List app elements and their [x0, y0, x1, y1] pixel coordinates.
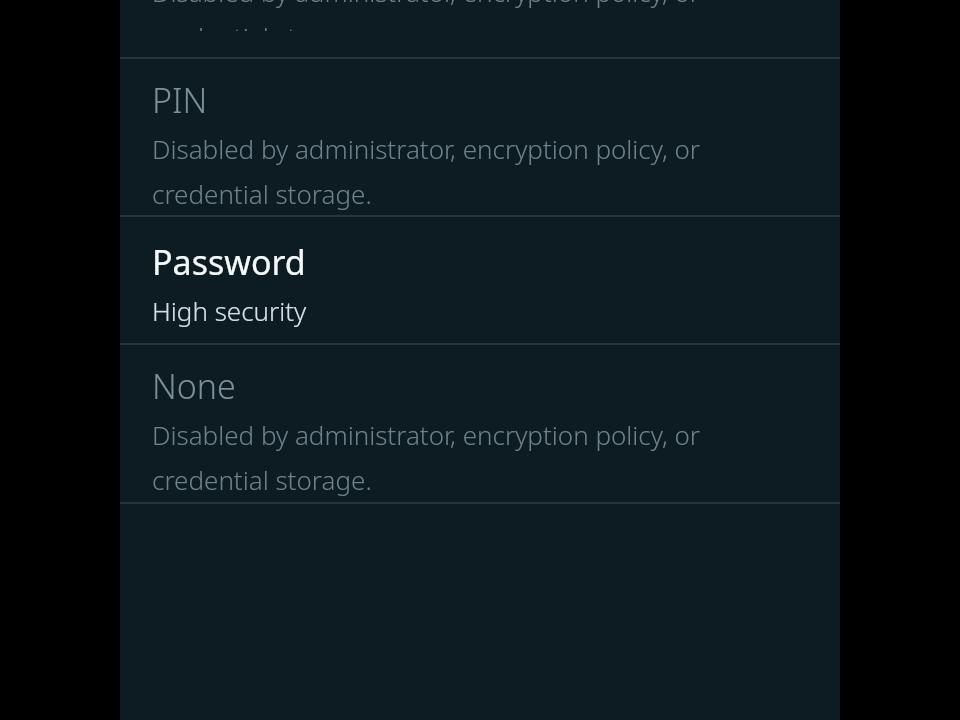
staticText: PIN: [152, 77, 208, 123]
staticText: credential storage.: [152, 462, 372, 497]
button[interactable]: PIN: [120, 59, 840, 215]
staticText: credential storage.: [152, 176, 372, 211]
staticText: Disabled by administrator, encryption po…: [152, 131, 701, 166]
staticText: credential storage.: [152, 19, 372, 31]
staticText: High security: [152, 293, 307, 328]
staticText: None: [152, 363, 236, 409]
staticText: Disabled by administrator, encryption po…: [152, 417, 701, 452]
button[interactable]: Password: [120, 217, 840, 343]
staticText: Disabled by administrator, encryption po…: [152, 0, 701, 9]
button[interactable]: Disabled by administrator, encryption po…: [120, 0, 840, 57]
button[interactable]: None: [120, 345, 840, 502]
staticText: Password: [152, 239, 306, 285]
